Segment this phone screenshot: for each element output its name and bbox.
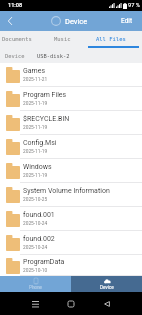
staticText: 2025-10-25 <box>23 197 48 203</box>
button[interactable]: All Files <box>86 31 136 48</box>
staticText: Music <box>54 36 71 42</box>
staticText: 2025-10-24 <box>23 221 48 227</box>
staticText: ProgramData <box>23 258 65 266</box>
staticText: All Files <box>96 36 126 42</box>
staticText: Windows <box>23 163 52 171</box>
button[interactable]: System Volume Information <box>0 183 142 207</box>
button[interactable]: Windows <box>0 159 142 183</box>
staticText: Config.Msi <box>23 139 57 147</box>
staticText: found.001 <box>23 211 55 219</box>
staticText: 2025-10-10 <box>23 268 48 274</box>
button[interactable]: ProgramData <box>0 255 142 276</box>
button[interactable]: Phone <box>0 276 71 292</box>
staticText: 2025-10-24 <box>23 245 48 251</box>
staticText: 2025-11-19 <box>23 101 48 107</box>
button[interactable]: Back <box>99 296 115 312</box>
button[interactable]: Games <box>0 63 142 87</box>
staticText: 2025-11-19 <box>23 173 48 179</box>
staticText: 2025-11-19 <box>23 149 48 155</box>
button[interactable]: Config.Msi <box>0 135 142 159</box>
button[interactable]: Program Files <box>0 87 142 111</box>
staticText: Games <box>23 67 46 75</box>
button[interactable]: Home <box>63 296 79 312</box>
staticText: Phone <box>29 285 43 290</box>
button[interactable]: Device <box>5 53 25 59</box>
staticText: 2025-11-21 <box>23 77 48 83</box>
staticText: 11:08 <box>8 2 23 9</box>
staticText: Device <box>65 17 88 26</box>
staticText: Program Files <box>23 91 67 99</box>
button[interactable]: $RECYCLE.BIN <box>0 111 142 135</box>
button[interactable]: Music <box>37 31 87 48</box>
button[interactable]: found.002 <box>0 231 142 255</box>
staticText: System Volume Information <box>23 187 110 195</box>
staticText: Edit <box>121 17 133 25</box>
staticText: Documents <box>2 36 32 42</box>
button[interactable]: Recent apps <box>27 296 43 312</box>
button[interactable]: USB-disk-2 <box>37 53 70 59</box>
staticText: Device <box>100 285 114 290</box>
staticText: found.002 <box>23 235 55 243</box>
button[interactable]: Device <box>71 276 142 292</box>
staticText: 2025-11-19 <box>23 125 48 131</box>
button[interactable]: Documents <box>0 31 42 48</box>
staticText: $RECYCLE.BIN <box>23 115 70 123</box>
button[interactable]: found.001 <box>0 207 142 231</box>
staticText: 97 % <box>128 2 140 9</box>
button[interactable]: Back <box>0 11 20 31</box>
button[interactable]: Edit <box>112 11 142 31</box>
